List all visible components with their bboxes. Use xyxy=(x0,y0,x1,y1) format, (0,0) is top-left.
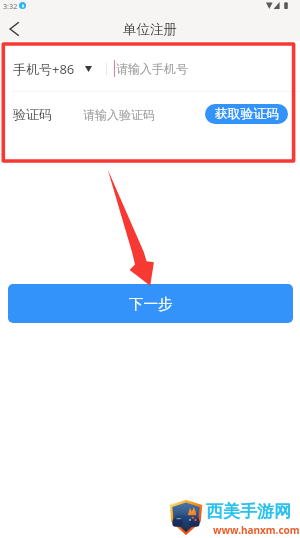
staticText: 下一步 xyxy=(129,295,173,313)
staticText: 获取验证码 xyxy=(215,106,279,122)
staticText: 验证码 xyxy=(13,106,52,122)
staticText: 请输入验证码 xyxy=(83,107,155,122)
button[interactable]: Back xyxy=(0,15,28,43)
button[interactable]: 下一步 xyxy=(8,284,293,323)
staticText: 3:32 xyxy=(3,1,18,11)
staticText: 西美手游网 xyxy=(206,501,291,522)
button[interactable]: 手机号+86 xyxy=(13,60,92,78)
staticText: 请输入手机号 xyxy=(116,61,188,76)
staticText: 单位注册 xyxy=(123,21,177,38)
button[interactable]: 获取验证码 xyxy=(205,104,288,124)
staticText: 手机号+86 xyxy=(13,60,75,78)
staticText: www.hanxm.com xyxy=(213,523,300,537)
